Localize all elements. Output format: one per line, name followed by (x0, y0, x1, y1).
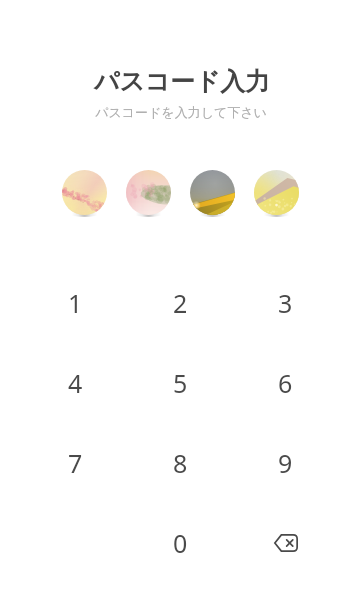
button[interactable]: 6 (233, 343, 338, 423)
button[interactable]: 8 (128, 423, 233, 503)
staticText: 5 (173, 366, 188, 400)
button[interactable]: 2 (128, 263, 233, 343)
button[interactable]: 7 (23, 423, 128, 503)
staticText: パスコードを入力して下さい (95, 104, 267, 120)
button[interactable]: 4 (23, 343, 128, 423)
button[interactable]: 0 (128, 503, 233, 583)
staticText: 6 (278, 366, 293, 400)
button[interactable]: 9 (233, 423, 338, 503)
staticText: 2 (173, 286, 188, 320)
staticText: 8 (173, 446, 188, 480)
staticText: 4 (68, 366, 83, 400)
staticText: パスコード入力 (94, 66, 270, 97)
staticText: 1 (68, 286, 83, 320)
button[interactable]: 5 (128, 343, 233, 423)
staticText: 9 (278, 446, 293, 480)
staticText: 3 (278, 286, 293, 320)
button[interactable]: 3 (233, 263, 338, 343)
button[interactable]: 1 (23, 263, 128, 343)
staticText: 7 (68, 446, 83, 480)
staticText: 0 (173, 526, 188, 560)
button[interactable]: Delete (233, 503, 338, 583)
